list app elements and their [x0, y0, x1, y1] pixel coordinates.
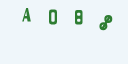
button[interactable]: A: [20, 6, 33, 24]
button[interactable]: percent: [99, 13, 114, 32]
button[interactable]: 0: [47, 8, 59, 26]
button[interactable]: 8: [73, 8, 85, 26]
